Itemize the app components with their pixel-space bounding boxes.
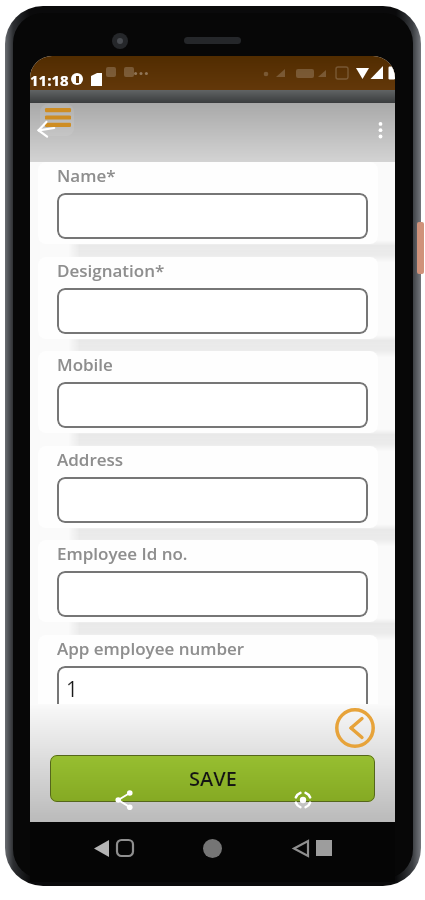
button[interactable]: Address <box>38 446 378 528</box>
staticText: SAVE <box>189 765 237 792</box>
staticText: App employee number <box>57 637 245 660</box>
staticText: Address <box>57 448 124 471</box>
button[interactable]: Employee Id no. <box>38 540 378 622</box>
button[interactable]: Home <box>203 839 222 858</box>
button[interactable]: Name* <box>38 162 378 244</box>
button[interactable]: Open navigation menu <box>39 103 77 139</box>
staticText: 11:18 <box>30 70 69 90</box>
button[interactable]: Previous <box>293 840 309 857</box>
button[interactable]: App employee number <box>38 635 378 717</box>
button[interactable]: Mobile <box>38 351 378 433</box>
button[interactable]: Back <box>94 840 109 857</box>
staticText: Designation* <box>57 259 165 282</box>
button[interactable]: Go back <box>335 708 375 748</box>
button[interactable]: Designation* <box>38 257 378 339</box>
staticText: Mobile <box>57 353 113 376</box>
staticText: Employee Id no. <box>57 542 188 565</box>
button[interactable]: More options <box>366 110 394 150</box>
button[interactable]: SAVE <box>50 755 375 802</box>
button[interactable]: My location <box>293 790 313 810</box>
staticText: 1 <box>66 675 79 704</box>
staticText: Name* <box>57 164 116 187</box>
button[interactable]: Share <box>115 790 133 810</box>
button[interactable]: Recent apps <box>117 840 133 856</box>
